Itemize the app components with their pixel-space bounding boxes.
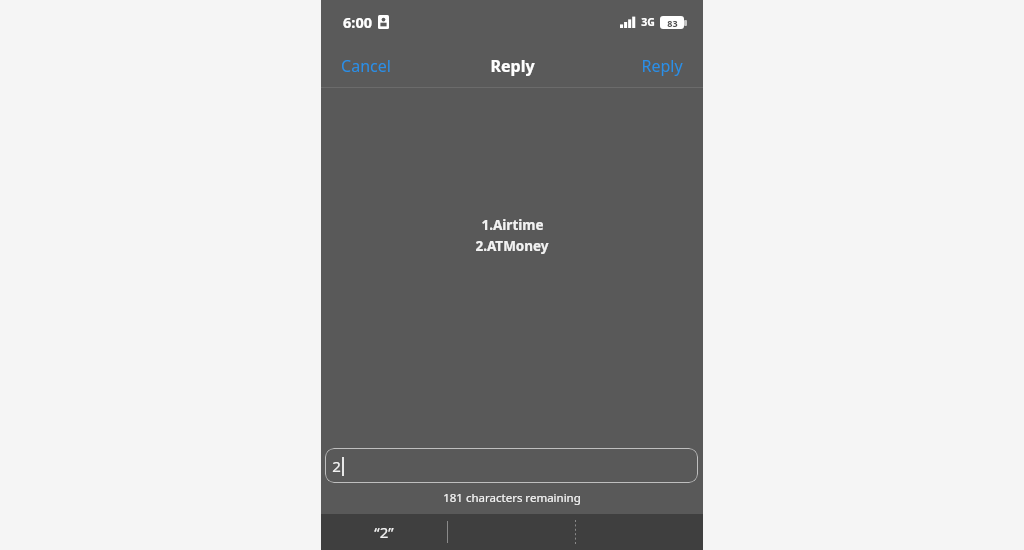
other: SIM status (378, 15, 389, 29)
button[interactable]: 2 (325, 448, 698, 483)
other: Battery 83 percent (660, 16, 684, 29)
button[interactable]: Reply (621, 47, 703, 85)
staticText: “2” (374, 522, 394, 542)
staticText: 83 (667, 17, 678, 29)
staticText: 2.ATMoney (475, 237, 549, 255)
staticText: 2 (332, 456, 341, 476)
staticText: Reply (490, 55, 535, 77)
staticText: 6:00 (343, 12, 372, 32)
staticText: Reply (641, 55, 683, 77)
button[interactable]: Cancel (321, 47, 411, 85)
button[interactable]: “2” (321, 514, 447, 550)
other: Signal strength (620, 16, 636, 28)
staticText: 3G (641, 15, 655, 29)
staticText: Cancel (341, 55, 391, 77)
staticText: 181 characters remaining (443, 490, 581, 506)
staticText: 1.Airtime (481, 216, 544, 234)
